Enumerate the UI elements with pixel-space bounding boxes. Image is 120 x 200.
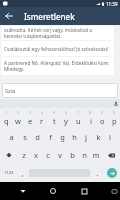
- staticText: h: [72, 132, 77, 142]
- staticText: 11:39: [106, 1, 118, 7]
- button[interactable]: d: [31, 128, 44, 146]
- button[interactable]: Voice input: [111, 99, 120, 108]
- staticText: a: [9, 132, 14, 142]
- button[interactable]: Shift: [0, 146, 18, 164]
- staticText: v: [58, 150, 62, 160]
- staticText: k: [96, 132, 101, 142]
- staticText: .: [96, 168, 99, 178]
- button[interactable]: Backspace: [102, 146, 120, 164]
- staticText: 7: [77, 110, 80, 115]
- button[interactable]: Back: [0, 7, 18, 25]
- button[interactable]: n: [78, 146, 90, 164]
- button[interactable]: v: [54, 146, 66, 164]
- button[interactable]: f: [44, 128, 56, 146]
- button[interactable]: Szia: [2, 83, 118, 98]
- staticText: Szia: [5, 87, 16, 94]
- button[interactable]: l: [104, 128, 116, 146]
- staticText: ,: [21, 168, 24, 178]
- staticText: t: [53, 116, 56, 126]
- button[interactable]: m: [90, 146, 102, 164]
- button[interactable]: b: [66, 146, 78, 164]
- button[interactable]: szálnodra. Kérlek várj vagy, módosítsd a…: [1, 26, 114, 40]
- staticText: w: [15, 116, 21, 126]
- button[interactable]: 2: [12, 108, 24, 128]
- staticText: i: [90, 116, 92, 126]
- button[interactable]: 4: [36, 108, 48, 128]
- button[interactable]: Csatlakoztál egy felhasználóhoz! Jó szór…: [1, 41, 114, 56]
- button[interactable]: j: [80, 128, 92, 146]
- button[interactable]: 3: [24, 108, 36, 128]
- staticText: d: [35, 132, 40, 142]
- button[interactable]: Switch keyboard: [108, 185, 120, 197]
- button[interactable]: 5: [48, 108, 60, 128]
- button[interactable]: 7: [72, 108, 84, 128]
- button[interactable]: ?123: [0, 164, 17, 182]
- button[interactable]: 0: [108, 108, 120, 128]
- staticText: r: [40, 116, 44, 126]
- button[interactable]: z: [18, 146, 30, 164]
- staticText: 4: [41, 110, 44, 115]
- staticText: x: [34, 150, 38, 160]
- staticText: z: [22, 150, 26, 160]
- button[interactable]: 9: [96, 108, 108, 128]
- staticText: c: [46, 150, 50, 160]
- staticText: l: [109, 132, 111, 142]
- staticText: 3: [29, 110, 32, 115]
- staticText: Csatlakoztál egy felhasználóhoz! Jó szór…: [4, 46, 109, 52]
- button[interactable]: a: [5, 128, 18, 146]
- staticText: p: [112, 116, 117, 126]
- staticText: q: [4, 116, 9, 126]
- staticText: 6: [65, 110, 68, 115]
- button[interactable]: g: [56, 128, 68, 146]
- staticText: 8: [89, 110, 92, 115]
- staticText: y: [64, 116, 68, 126]
- button[interactable]: Send: [103, 164, 120, 182]
- staticText: n: [82, 150, 87, 160]
- button[interactable]: Back: [16, 184, 30, 198]
- staticText: 0: [113, 110, 116, 115]
- staticText: 9: [101, 110, 104, 115]
- staticText: e: [28, 116, 33, 126]
- button[interactable]: ,: [17, 164, 28, 182]
- button[interactable]: Home: [46, 184, 60, 198]
- staticText: 5: [53, 110, 56, 115]
- staticText: u: [76, 116, 81, 126]
- button[interactable]: s: [18, 128, 31, 146]
- staticText: g: [60, 132, 65, 142]
- staticText: b: [70, 150, 75, 160]
- button[interactable]: h: [68, 128, 80, 146]
- button[interactable]: A partnered Nő. Allergiád: Vaj. Érdeklőd…: [1, 57, 114, 75]
- staticText: Ismeretlenek: [24, 11, 75, 22]
- button[interactable]: c: [42, 146, 54, 164]
- staticText: ?123: [4, 170, 14, 176]
- staticText: f: [49, 132, 52, 142]
- button[interactable]: k: [92, 128, 104, 146]
- staticText: 2: [17, 110, 20, 115]
- staticText: szálnodra. Kérlek várj vagy, módosítsd a…: [4, 27, 111, 39]
- button[interactable]: x: [30, 146, 42, 164]
- button[interactable]: 6: [60, 108, 72, 128]
- staticText: s: [23, 132, 27, 142]
- button[interactable]: Recent apps: [77, 184, 91, 198]
- button[interactable]: 1: [0, 108, 12, 128]
- staticText: 1: [5, 110, 8, 115]
- staticText: m: [92, 150, 100, 160]
- button[interactable]: 8: [84, 108, 96, 128]
- button[interactable]: .: [91, 164, 103, 182]
- staticText: A partnered Nő. Allergiád: Vaj. Érdeklőd…: [4, 60, 111, 72]
- staticText: j: [85, 132, 87, 142]
- staticText: o: [100, 116, 105, 126]
